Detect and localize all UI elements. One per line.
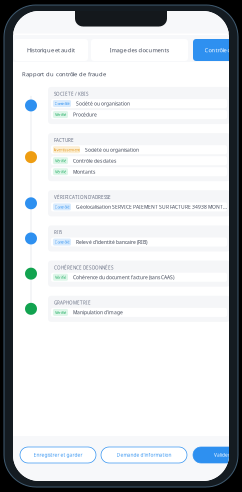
staticText: Contrôlé: [54, 101, 69, 106]
staticText: Vérifié: [55, 169, 66, 174]
staticText: VÉRIFICATION D'ADRESSE: [54, 194, 111, 200]
staticText: Géolocalisation SERVICE PAIEMENT SUR FAC…: [76, 203, 227, 210]
button[interactable]: Valider: [193, 447, 242, 463]
staticText: Procédure: [73, 111, 97, 118]
staticText: Cohérence du document facture (sans CAAS…: [73, 274, 174, 281]
staticText: Valider: [214, 452, 230, 458]
staticText: Montants: [73, 168, 95, 175]
staticText: Société ou organisation: [76, 100, 130, 107]
staticText: Vérifié: [55, 310, 66, 315]
button[interactable]: Enregistrer et garder: [20, 447, 96, 463]
button[interactable]: Image des documents: [91, 39, 188, 61]
button[interactable]: Historique et audit: [14, 39, 88, 61]
button[interactable]: Contrôle de fraude: [193, 39, 242, 61]
staticText: Contrôle des dates: [73, 157, 116, 164]
staticText: Vérifié: [55, 112, 66, 117]
staticText: Manipulation d'image: [73, 309, 123, 316]
staticText: Vérifié: [55, 158, 66, 163]
staticText: Contrôle de fraude: [204, 46, 242, 54]
staticText: RIB: [54, 229, 62, 236]
staticText: SOCIÉTÉ / KBIS: [54, 91, 88, 97]
staticText: FACTURE: [54, 137, 74, 143]
staticText: Rapport du contrôle de fraude: [22, 70, 106, 78]
staticText: Demande d'information: [116, 452, 171, 458]
staticText: COHÉRENCE DES DONNÉES: [54, 265, 113, 271]
staticText: Vérifié: [55, 274, 66, 280]
staticText: Image des documents: [109, 46, 169, 54]
staticText: Enregistrer et garder: [33, 452, 82, 458]
staticText: Relevé d'identité bancaire (RIB): [76, 239, 147, 245]
staticText: GRAPHOMÉTRIE: [54, 300, 91, 306]
button[interactable]: Demande d'information: [101, 447, 187, 463]
staticText: Avertissement: [53, 147, 79, 152]
staticText: Historique et audit: [27, 46, 75, 54]
staticText: Société ou organisation: [85, 146, 139, 153]
staticText: Contrôlé: [54, 204, 69, 210]
staticText: Contrôlé: [54, 239, 69, 245]
